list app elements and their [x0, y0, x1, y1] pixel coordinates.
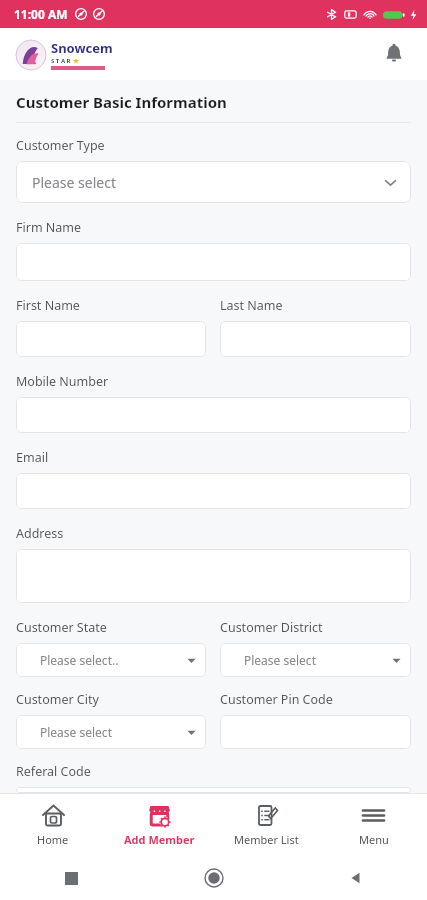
staticText: Email	[16, 449, 49, 466]
staticText: Customer Type	[16, 137, 105, 154]
button[interactable]: Menu	[320, 794, 427, 856]
staticText: Please select	[244, 652, 316, 668]
button[interactable]: Please select	[220, 643, 411, 677]
button[interactable]: Home	[0, 794, 106, 856]
button[interactable]	[220, 321, 411, 357]
staticText: 11:00 AM	[14, 6, 68, 22]
staticText: Customer Basic Information	[16, 92, 227, 112]
staticText: Please select	[40, 724, 112, 740]
button[interactable]	[16, 549, 411, 603]
button[interactable]	[16, 787, 411, 793]
staticText: Menu	[359, 832, 389, 847]
button[interactable]	[16, 321, 206, 357]
staticText: Firm Name	[16, 219, 82, 236]
staticText: First Name	[16, 297, 80, 314]
button[interactable]: Add Member	[106, 794, 213, 856]
staticText: Member List	[234, 832, 299, 847]
button[interactable]: Recents	[0, 856, 143, 900]
staticText: Customer Pin Code	[220, 691, 333, 708]
button[interactable]: Back	[285, 856, 427, 900]
button[interactable]: Please select..	[16, 643, 206, 677]
staticText: Last Name	[220, 297, 283, 314]
staticText: Add Member	[124, 832, 195, 847]
button[interactable]: Snowcem	[16, 39, 113, 70]
button[interactable]	[16, 397, 411, 433]
button[interactable]	[16, 243, 411, 281]
staticText: Home	[37, 832, 69, 847]
staticText: Customer District	[220, 619, 323, 636]
button[interactable]: Please select	[16, 161, 411, 203]
staticText: Mobile Number	[16, 373, 109, 390]
staticText: Please select..	[40, 652, 119, 668]
button[interactable]	[16, 473, 411, 509]
staticText: S T A R	[51, 57, 71, 65]
button[interactable]: Notifications	[377, 37, 411, 71]
staticText: Address	[16, 525, 64, 542]
button[interactable]: Member List	[213, 794, 320, 856]
staticText: Referal Code	[16, 763, 91, 780]
button[interactable]	[220, 715, 411, 749]
staticText: Snowcem	[51, 39, 113, 57]
staticText: Please select	[32, 173, 116, 192]
staticText: Customer City	[16, 691, 99, 708]
staticText: Customer State	[16, 619, 107, 636]
button[interactable]: Please select	[16, 715, 206, 749]
button[interactable]: Home	[143, 856, 285, 900]
